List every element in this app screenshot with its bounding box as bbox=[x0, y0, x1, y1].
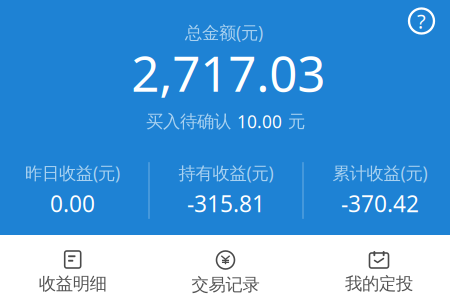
staticText: 交易记录 bbox=[191, 274, 259, 295]
button[interactable]: 收益明细 bbox=[0, 235, 148, 300]
button[interactable]: Help bbox=[404, 4, 438, 38]
staticText: 元 bbox=[288, 111, 305, 132]
button[interactable]: 交易记录 bbox=[150, 235, 300, 300]
button[interactable]: 我的定投 bbox=[304, 235, 450, 300]
staticText: 昨日收益(元) bbox=[25, 161, 120, 184]
staticText: 持有收益(元) bbox=[178, 161, 273, 184]
staticText: 收益明细 bbox=[39, 273, 107, 294]
staticText: ? bbox=[417, 8, 426, 34]
staticText: 0.00 bbox=[50, 188, 95, 218]
staticText: 我的定投 bbox=[345, 273, 413, 294]
staticText: 总金额(元) bbox=[185, 21, 263, 44]
staticText: 买入待确认 bbox=[146, 111, 231, 132]
staticText: 10.00 bbox=[237, 110, 282, 133]
staticText: -370.42 bbox=[341, 188, 419, 218]
staticText: 累计收益(元) bbox=[332, 161, 427, 184]
staticText: 2,717.03 bbox=[131, 40, 325, 105]
staticText: -315.81 bbox=[187, 188, 265, 218]
